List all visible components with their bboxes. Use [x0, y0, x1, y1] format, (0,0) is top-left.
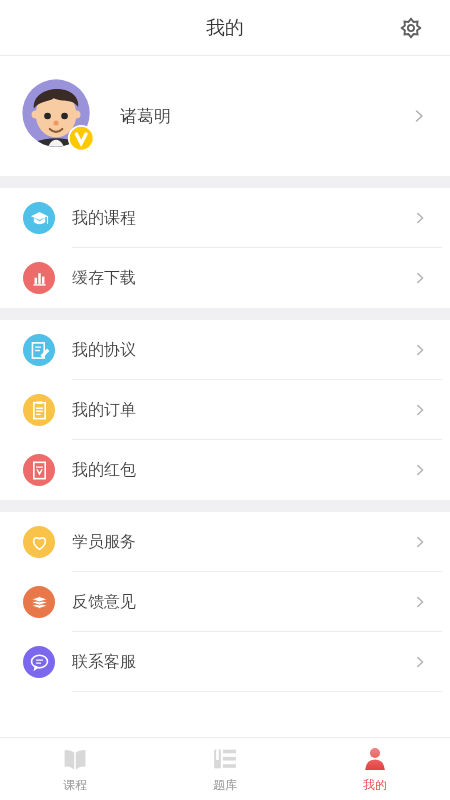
- button[interactable]: 我的课程: [0, 188, 450, 248]
- button[interactable]: 我的: [300, 738, 450, 800]
- staticText: 联系客服: [72, 652, 136, 672]
- button[interactable]: 学员服务: [0, 512, 450, 572]
- button[interactable]: 反馈意见: [0, 572, 450, 632]
- staticText: 学员服务: [72, 532, 136, 552]
- button[interactable]: 联系客服: [0, 632, 450, 692]
- staticText: 缓存下载: [72, 268, 136, 288]
- staticText: 我的协议: [72, 340, 136, 360]
- staticText: 我的课程: [72, 208, 136, 228]
- staticText: 我的红包: [72, 460, 136, 480]
- staticText: 课程: [63, 777, 87, 792]
- button[interactable]: 缓存下载: [0, 248, 450, 308]
- button[interactable]: 诸葛明: [0, 56, 450, 176]
- staticText: 诸葛明: [120, 106, 171, 127]
- button[interactable]: 我的协议: [0, 320, 450, 380]
- button[interactable]: 我的订单: [0, 380, 450, 440]
- button[interactable]: 课程: [0, 738, 150, 800]
- button[interactable]: 我的红包: [0, 440, 450, 500]
- button[interactable]: 题库: [150, 738, 300, 800]
- staticText: 我的订单: [72, 400, 136, 420]
- staticText: 我的: [206, 16, 244, 40]
- staticText: 我的: [363, 777, 387, 792]
- staticText: 反馈意见: [72, 592, 136, 612]
- button[interactable]: Settings: [394, 11, 428, 45]
- staticText: 题库: [213, 777, 237, 792]
